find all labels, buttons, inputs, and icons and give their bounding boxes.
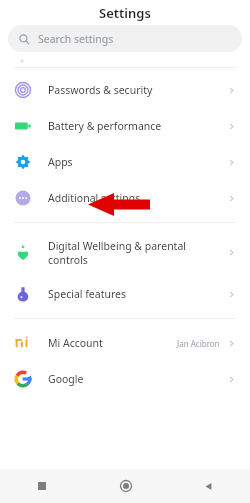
button[interactable]: Battery & performance [0, 108, 250, 144]
button[interactable]: Passwords & security [0, 72, 250, 108]
staticText: Settings [99, 4, 151, 22]
staticText: Apps [48, 155, 227, 169]
button[interactable]: Home [84, 469, 167, 503]
button[interactable]: Mi Account [0, 325, 250, 361]
button[interactable]: Search settings [8, 25, 242, 52]
staticText: Additional settings [48, 191, 227, 205]
button[interactable]: Google [0, 361, 250, 397]
button[interactable]: Special features [0, 276, 250, 312]
staticText: Jan Acibron [177, 338, 220, 349]
button[interactable]: Additional settings [0, 180, 250, 216]
button[interactable]: Recent apps [0, 469, 84, 503]
staticText: Battery & performance [48, 119, 227, 133]
staticText: Special features [48, 287, 227, 301]
button[interactable]: Back [167, 469, 250, 503]
staticText: Passwords & security [48, 83, 227, 97]
button[interactable]: Apps [0, 144, 250, 180]
button[interactable]: Digital Wellbeing & parental controls [0, 229, 250, 276]
staticText: Digital Wellbeing & parental controls [48, 239, 227, 267]
staticText: Search settings [38, 32, 114, 46]
staticText: Google [48, 372, 227, 386]
staticText: Mi Account [48, 336, 177, 350]
